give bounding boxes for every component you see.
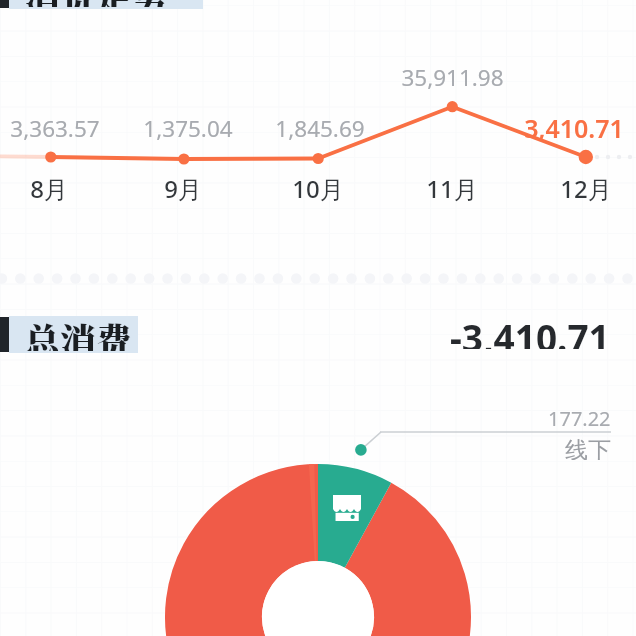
staticText: 11月 <box>426 172 478 204</box>
staticText: 总消费 <box>24 314 133 351</box>
staticText: -3,410.71 <box>450 312 610 349</box>
staticText: 10月 <box>292 172 344 204</box>
staticText: 1,845.69 <box>275 113 365 144</box>
staticText: 9月 <box>164 172 202 204</box>
staticText: 消费走势 <box>24 0 169 7</box>
staticText: 1,375.04 <box>143 113 233 144</box>
button[interactable]: 消费走势 <box>0 0 203 9</box>
staticText: 3,363.57 <box>10 113 100 144</box>
staticText: 3,410.71 <box>524 111 624 143</box>
other: 线下消费 <box>333 495 361 521</box>
staticText: 线下 <box>565 436 611 460</box>
staticText: 177.22 <box>548 405 611 429</box>
button[interactable]: 线下 177.22 <box>318 464 392 564</box>
staticText: 12月 <box>560 172 612 204</box>
button[interactable]: 总消费 <box>0 316 138 353</box>
staticText: 8月 <box>30 172 68 204</box>
staticText: 35,911.98 <box>401 62 504 93</box>
